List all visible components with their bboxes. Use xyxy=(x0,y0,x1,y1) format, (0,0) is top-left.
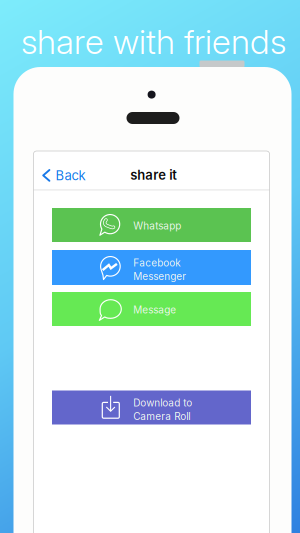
staticText: Message xyxy=(133,304,176,316)
staticText: Facebook xyxy=(133,257,180,269)
staticText: Whatsapp xyxy=(133,220,181,232)
staticText: Download to xyxy=(133,397,192,409)
staticText: Camera Roll xyxy=(133,410,190,422)
button[interactable]: Facebook xyxy=(52,250,251,285)
button[interactable]: Download to xyxy=(52,390,251,424)
staticText: Back xyxy=(55,167,85,183)
staticText: share with friends xyxy=(21,21,286,62)
button[interactable]: Back xyxy=(36,162,90,188)
staticText: Messenger xyxy=(133,270,186,282)
staticText: share it xyxy=(130,167,177,183)
button[interactable]: Whatsapp xyxy=(52,208,251,242)
button[interactable]: Message xyxy=(52,292,251,326)
